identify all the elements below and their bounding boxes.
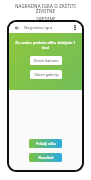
button[interactable]: Otvori galeriju [30,70,62,79]
button[interactable]: Pošalji sliku [29,139,62,148]
button[interactable]: More options [70,23,79,32]
staticText: SREDINE [36,16,56,22]
staticText: Rezultati [38,155,54,160]
staticText: NAGRADNA IGRA O ZAŠTITI ŽIVOTNE [6,3,85,15]
staticText: Otvori kameru [33,58,59,63]
staticText: Otvori galeriju [34,72,59,77]
button[interactable]: Rezultati [29,153,62,162]
button[interactable]: Back [12,23,21,32]
staticText: Nagradna igra [24,25,70,31]
staticText: Pošalji sliku [36,141,56,146]
button[interactable]: Otvori kameru [30,56,62,65]
staticText: Za svaku poslatu sliku dobijate 1 bod [13,40,78,50]
